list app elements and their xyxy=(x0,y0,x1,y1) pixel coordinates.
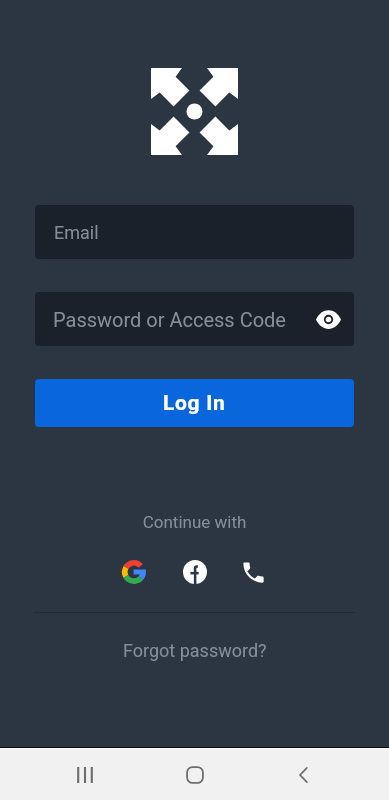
button[interactable]: Back xyxy=(280,751,328,799)
staticText: Email xyxy=(54,222,99,243)
button[interactable]: Log In xyxy=(35,379,354,427)
button[interactable]: Password or Access Code xyxy=(35,292,354,346)
staticText: Forgot password? xyxy=(123,640,267,661)
button[interactable]: Continue with phone xyxy=(231,550,275,594)
staticText: Password or Access Code xyxy=(53,308,286,331)
button[interactable]: Forgot password? xyxy=(109,630,281,671)
button[interactable]: Continue with Facebook xyxy=(173,550,217,594)
staticText: Log In xyxy=(163,391,226,416)
button[interactable]: Home xyxy=(171,751,219,799)
button[interactable]: Recent apps xyxy=(61,751,109,799)
button[interactable]: Show password xyxy=(310,301,346,337)
button[interactable]: Continue with Google xyxy=(112,550,156,594)
button[interactable]: Email xyxy=(35,205,354,259)
staticText: Continue with xyxy=(0,512,389,532)
